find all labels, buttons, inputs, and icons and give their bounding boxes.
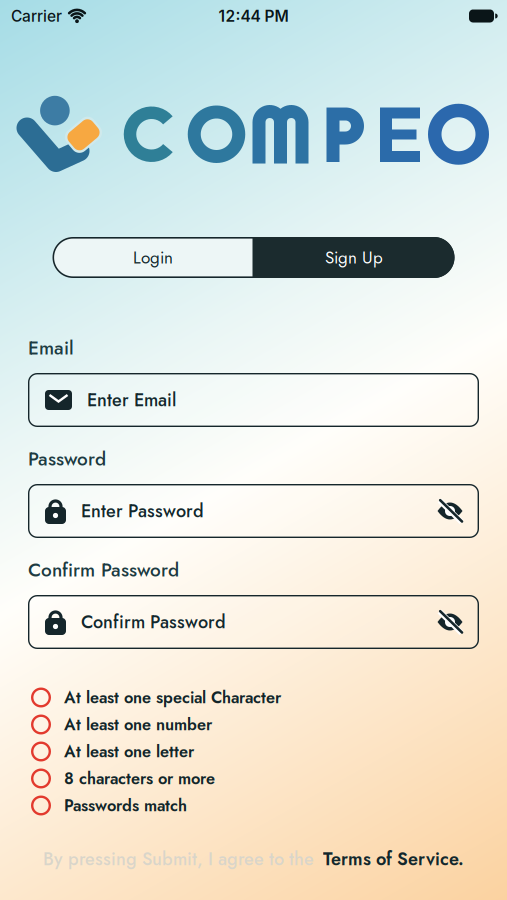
button[interactable]: Login — [52, 237, 253, 278]
staticText: Login — [133, 245, 173, 270]
staticText: Sign Up — [325, 245, 383, 270]
button[interactable]: Enter Email — [28, 373, 479, 427]
staticText: Confirm Password — [28, 556, 179, 584]
staticText: 8 characters or more — [64, 767, 215, 790]
button[interactable]: Show password — [437, 500, 463, 522]
button[interactable]: Terms of Service. — [323, 846, 464, 872]
staticText: Confirm Password — [81, 609, 226, 635]
staticText: By pressing Submit, I agree to the — [43, 846, 314, 872]
staticText: Carrier — [11, 7, 62, 25]
button[interactable]: Show password — [437, 611, 463, 633]
staticText: At least one special Character — [64, 686, 281, 709]
button[interactable]: Enter Password — [28, 484, 479, 538]
staticText: At least one letter — [64, 740, 194, 763]
button[interactable]: Sign Up — [253, 237, 454, 278]
staticText: Email — [28, 334, 74, 362]
staticText: Password — [28, 445, 106, 473]
button[interactable]: Confirm Password — [28, 595, 479, 649]
staticText: Passwords match — [64, 794, 187, 817]
staticText: Terms of Service. — [323, 846, 464, 872]
staticText: Enter Email — [87, 387, 176, 413]
staticText: At least one number — [64, 713, 212, 736]
staticText: 12:44 PM — [218, 7, 288, 25]
staticText: Enter Password — [81, 498, 204, 524]
